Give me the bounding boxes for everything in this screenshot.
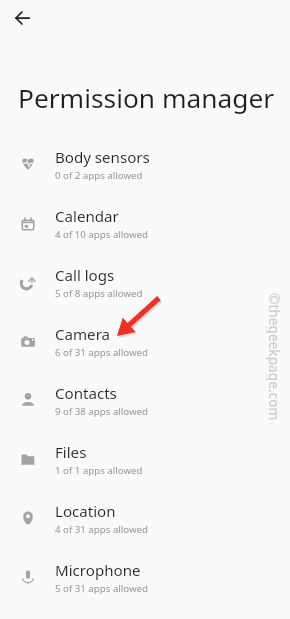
button[interactable]: Location <box>0 490 290 549</box>
staticText: 6 of 31 apps allowed <box>55 346 149 359</box>
staticText: 4 of 31 apps allowed <box>55 523 149 536</box>
staticText: Location <box>55 501 116 522</box>
button[interactable]: Body sensors <box>0 136 290 195</box>
staticText: ©thegeekpage.com <box>266 293 284 421</box>
staticText: Files <box>55 442 87 463</box>
staticText: 5 of 31 apps allowed <box>55 582 149 595</box>
button[interactable]: Microphone <box>0 549 290 608</box>
button[interactable]: Camera <box>0 313 290 372</box>
button[interactable]: Files <box>0 431 290 490</box>
staticText: Microphone <box>55 560 141 581</box>
button[interactable]: Calendar <box>0 195 290 254</box>
button[interactable]: Call logs <box>0 254 290 313</box>
staticText: Camera <box>55 324 111 345</box>
staticText: 9 of 38 apps allowed <box>55 405 149 418</box>
staticText: 5 of 8 apps allowed <box>55 287 143 300</box>
staticText: Contacts <box>55 383 117 404</box>
staticText: 1 of 1 apps allowed <box>55 464 143 477</box>
staticText: 0 of 2 apps allowed <box>55 169 143 182</box>
button[interactable]: Contacts <box>0 372 290 431</box>
staticText: Body sensors <box>55 147 150 168</box>
button[interactable]: Back <box>2 0 42 38</box>
staticText: Calendar <box>55 206 119 227</box>
staticText: Permission manager <box>18 80 275 116</box>
staticText: 4 of 10 apps allowed <box>55 228 149 241</box>
staticText: Call logs <box>55 265 115 286</box>
